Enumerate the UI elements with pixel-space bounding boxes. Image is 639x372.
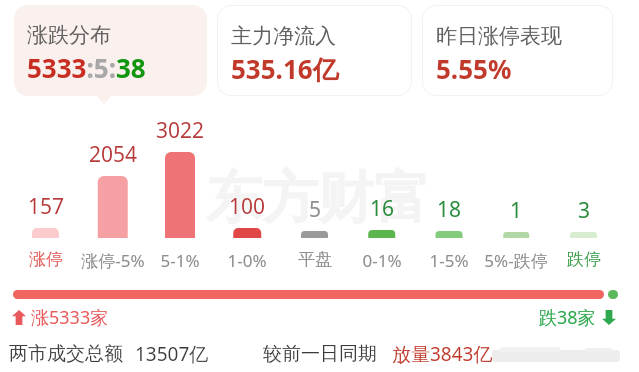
staticText: 1-0% <box>202 249 292 272</box>
staticText: 13507亿 <box>135 341 209 367</box>
staticText: 较前一日同期 <box>263 342 377 366</box>
button[interactable]: 昨日涨停表现 <box>423 6 612 95</box>
staticText: 0-1% <box>337 249 427 272</box>
staticText: 涨停 <box>1 249 91 270</box>
staticText: 涨停-5% <box>68 249 158 272</box>
staticText: 1 <box>476 196 556 225</box>
staticText: 2054 <box>73 140 153 169</box>
staticText: 5.55% <box>436 51 512 86</box>
staticText: 1-5% <box>404 249 494 272</box>
staticText: 东方财富 <box>206 163 430 234</box>
staticText: 157 <box>6 192 86 221</box>
staticText: 主力净流入 <box>231 23 336 49</box>
staticText: 5333:5:38 <box>27 50 146 85</box>
staticText: 两市成交总额 <box>9 342 123 366</box>
staticText: 跌停 <box>539 249 629 270</box>
button[interactable]: 主力净流入 <box>218 6 411 95</box>
staticText: 跌38家 <box>539 305 596 330</box>
staticText: 放量3843亿 <box>392 341 493 367</box>
staticText: 5%-跌停 <box>471 249 561 272</box>
staticText: 涨5333家 <box>31 305 109 330</box>
staticText: 3022 <box>140 116 220 145</box>
staticText: 5 <box>275 195 355 224</box>
staticText: 昨日涨停表现 <box>436 23 562 49</box>
staticText: 18 <box>409 195 489 224</box>
staticText: 100 <box>207 192 287 221</box>
staticText: 16 <box>342 194 422 223</box>
staticText: 涨跌分布 <box>27 22 111 48</box>
staticText: 平盘 <box>270 249 360 270</box>
staticText: 535.16亿 <box>231 51 339 87</box>
staticText: 3 <box>544 196 624 225</box>
staticText: 5-1% <box>135 249 225 272</box>
button[interactable]: 涨跌分布 <box>14 5 207 96</box>
